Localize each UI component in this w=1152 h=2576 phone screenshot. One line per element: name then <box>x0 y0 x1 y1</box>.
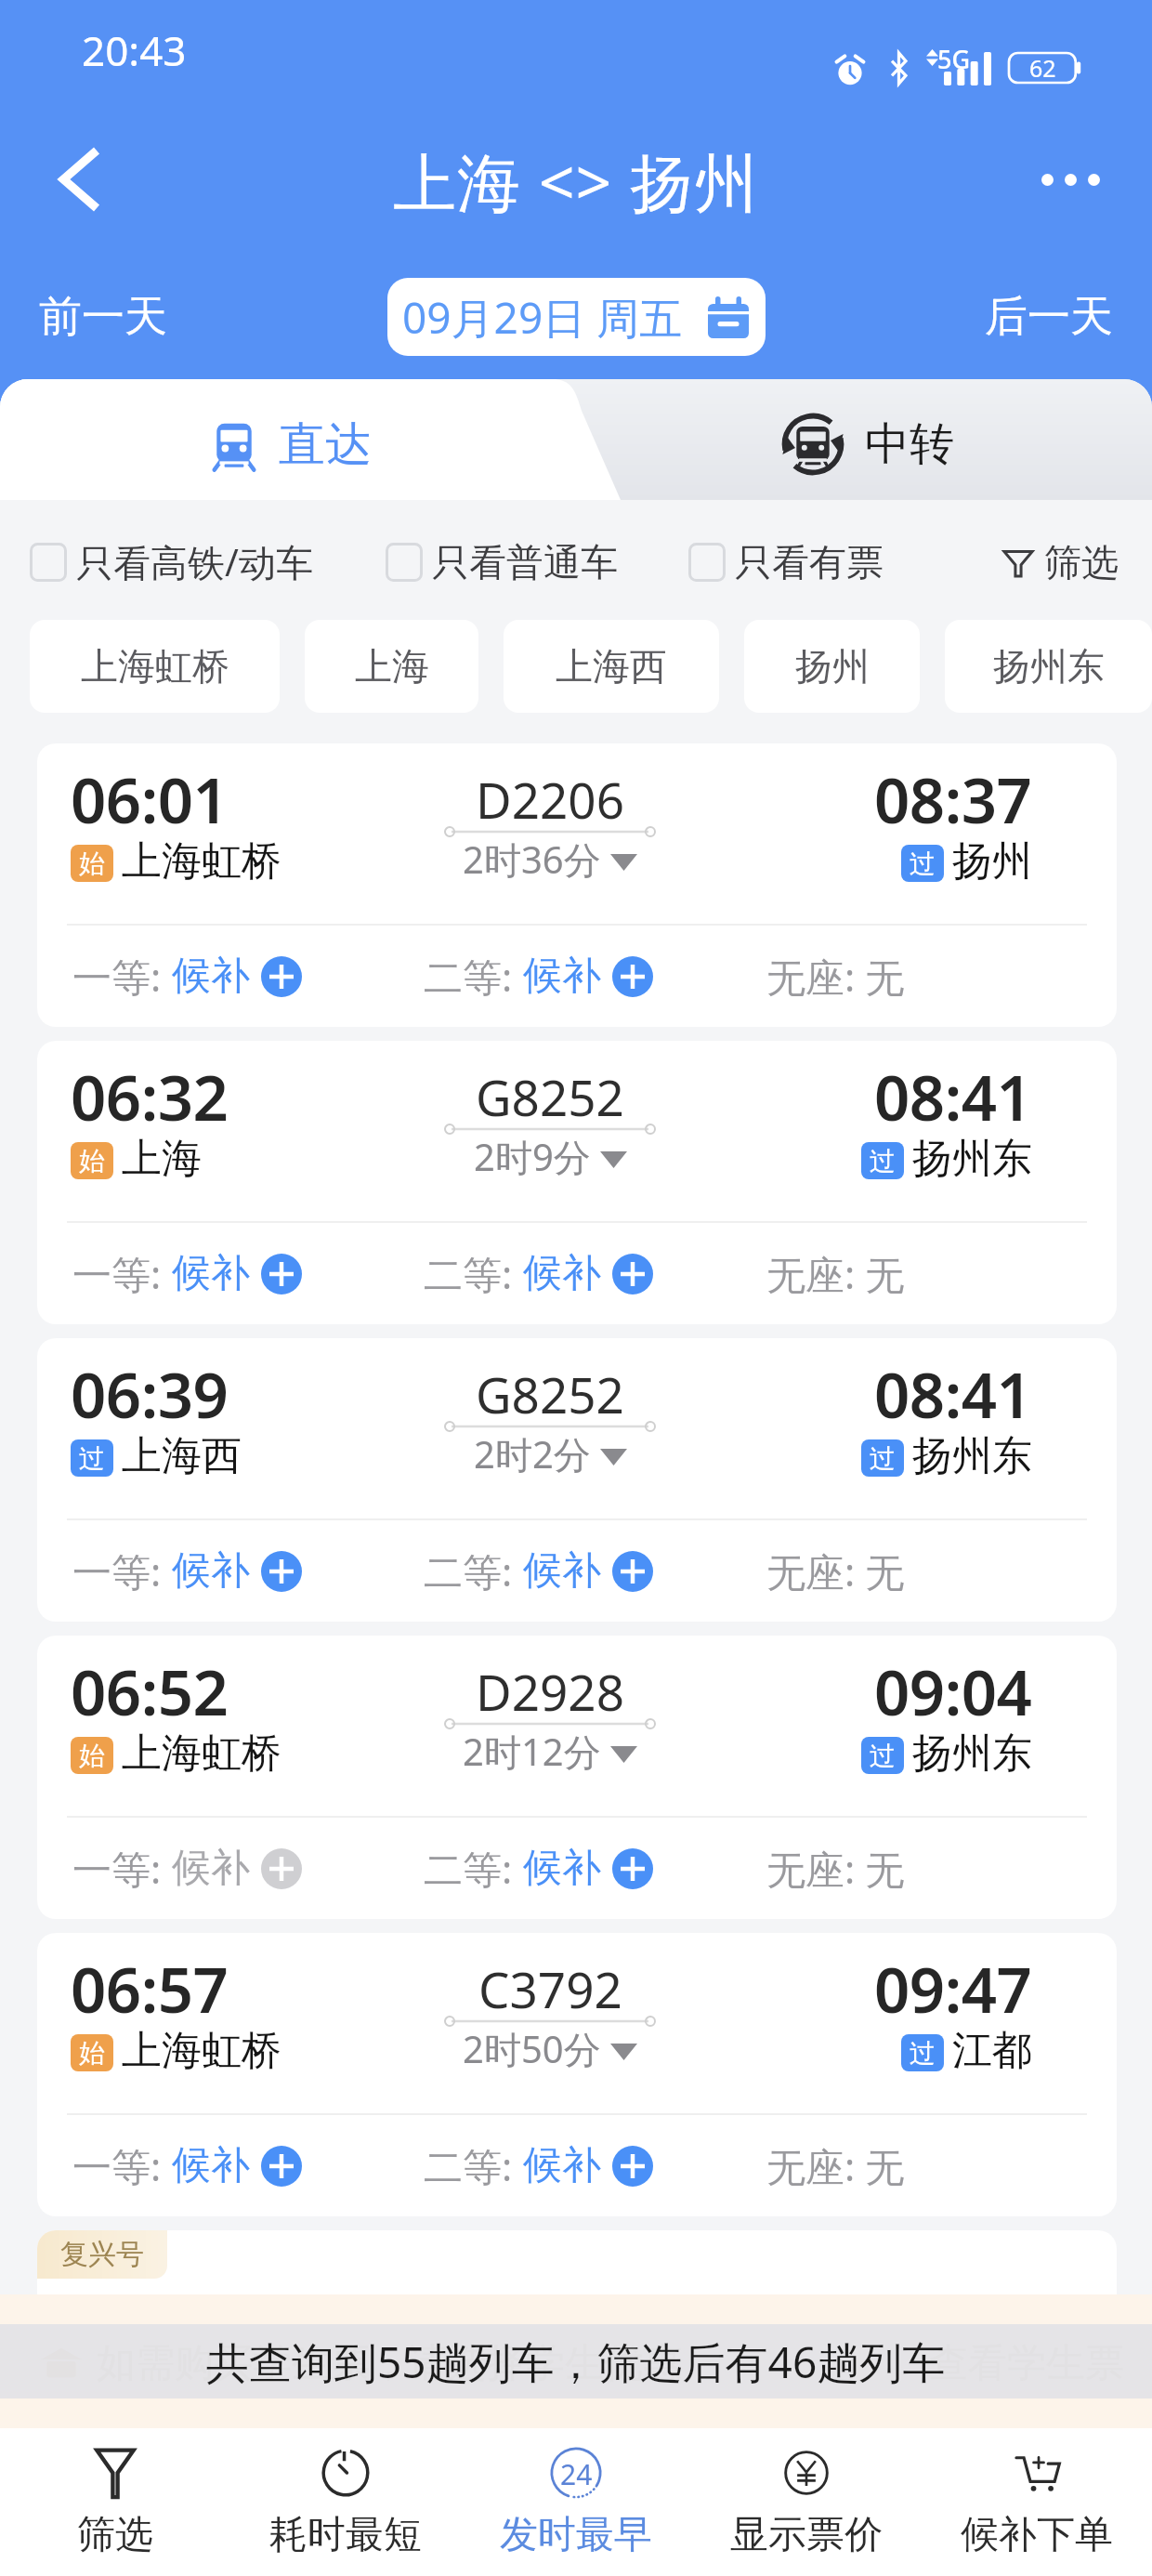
button[interactable]: 只看普通车 <box>386 533 618 591</box>
button[interactable]: 二等: <box>424 950 653 1003</box>
button[interactable]: 06:52 <box>37 1636 1117 1919</box>
staticText: 候补 <box>172 952 250 1001</box>
staticText: 中转 <box>865 416 954 472</box>
staticText: 06:52 <box>71 1649 229 1733</box>
staticText: 无座: 无 <box>766 950 905 1003</box>
staticText: 06:01 <box>71 756 229 841</box>
staticText: 上海西 <box>556 643 667 690</box>
button[interactable]: 二等: <box>424 2139 653 2192</box>
staticText: 无座: 无 <box>766 1842 905 1895</box>
button[interactable]: 06:01 <box>37 743 1117 1027</box>
staticText: 09:04 <box>874 1649 1032 1733</box>
staticText: 08:41 <box>874 1351 1032 1436</box>
button[interactable]: 06:39 <box>37 1338 1117 1622</box>
staticText: 08:41 <box>874 1054 1032 1138</box>
staticText: 2时50分 <box>463 2023 601 2074</box>
staticText: 共查询到55趟列车，筛选后有46趟列车 <box>206 2333 946 2391</box>
button[interactable]: 一等: <box>72 950 302 1003</box>
button[interactable]: 上海西 <box>504 620 719 713</box>
staticText: 二等: <box>424 950 523 1003</box>
staticText: 2时2分 <box>474 1428 591 1479</box>
staticText: 二等: <box>424 1247 523 1300</box>
button[interactable]: 直达 <box>0 379 624 500</box>
staticText: D2206 <box>476 766 624 833</box>
button[interactable]: 二等: <box>424 1842 653 1895</box>
button[interactable]: Back <box>39 140 117 218</box>
staticText: 二等: <box>424 2139 523 2192</box>
staticText: 无座: 无 <box>766 2139 905 2192</box>
button[interactable]: 复兴号 <box>37 2230 1117 2370</box>
staticText: 候补 <box>523 952 601 1001</box>
staticText: 上海虹桥 <box>122 2026 281 2076</box>
staticText: 2时36分 <box>463 834 601 885</box>
button[interactable]: 扬州 <box>744 620 920 713</box>
button[interactable]: 09月29日 周五 <box>387 278 766 356</box>
staticText: 06:39 <box>71 1351 229 1436</box>
staticText: 扬州 <box>795 643 870 690</box>
button[interactable]: 上海虹桥 <box>30 620 280 713</box>
staticText: D2928 <box>476 1658 624 1725</box>
staticText: G8252 <box>476 1063 624 1130</box>
staticText: 一等: <box>72 1247 172 1300</box>
staticText: 过 <box>870 1442 896 1475</box>
staticText: 过 <box>910 848 936 880</box>
button[interactable]: 一等: <box>72 1544 302 1597</box>
staticText: 候补下单 <box>961 2511 1113 2559</box>
staticText: 06:57 <box>71 1946 229 2031</box>
staticText: 上海 <box>355 643 429 690</box>
button[interactable]: 中转 <box>781 413 954 476</box>
staticText: 候补 <box>172 1546 250 1596</box>
staticText: 扬州东 <box>912 1728 1032 1779</box>
button[interactable]: 24 <box>461 2428 691 2576</box>
button[interactable]: 后一天 <box>974 281 1124 353</box>
staticText: G8252 <box>476 1360 624 1427</box>
button[interactable]: 只看有票 <box>688 533 884 591</box>
button[interactable]: 显示票价 <box>691 2428 922 2576</box>
staticText: 上海 <> 扬州 <box>393 138 759 224</box>
button[interactable]: 前一天 <box>28 281 178 353</box>
staticText: 只看高铁/动车 <box>76 536 313 587</box>
button[interactable]: 06:57 <box>37 1933 1117 2216</box>
button[interactable]: 二等: <box>424 1544 653 1597</box>
button[interactable]: 耗时最短 <box>230 2428 461 2576</box>
staticText: 江都 <box>952 2026 1032 2076</box>
staticText: 后一天 <box>985 290 1113 344</box>
staticText: 06:32 <box>71 1054 229 1138</box>
staticText: 扬州 <box>952 836 1032 887</box>
staticText: C3792 <box>478 1955 622 2022</box>
staticText: 上海虹桥 <box>122 1728 281 1779</box>
staticText: 候补 <box>523 1249 601 1298</box>
staticText: 只看有票 <box>735 539 884 585</box>
staticText: 上海虹桥 <box>81 643 229 690</box>
button[interactable]: 二等: <box>424 1247 653 1300</box>
staticText: 耗时最短 <box>269 2511 422 2559</box>
staticText: 24 <box>560 2455 593 2493</box>
button[interactable]: 一等: <box>72 2139 302 2192</box>
staticText: 筛选 <box>77 2511 153 2559</box>
staticText: 过 <box>910 2037 936 2070</box>
staticText: 一等: <box>72 1842 172 1895</box>
button[interactable]: 候补下单 <box>922 2428 1152 2576</box>
button[interactable]: 一等: <box>72 1842 302 1895</box>
button[interactable]: 扬州东 <box>945 620 1152 713</box>
staticText: 始 <box>79 1740 105 1772</box>
button[interactable]: 筛选 <box>0 2428 230 2576</box>
button[interactable]: 只看高铁/动车 <box>30 531 313 593</box>
button[interactable]: 06:32 <box>37 1041 1117 1324</box>
button[interactable]: 上海 <box>305 620 478 713</box>
staticText: 一等: <box>72 1544 172 1597</box>
button[interactable]: 一等: <box>72 1247 302 1300</box>
staticText: 二等: <box>424 1842 523 1895</box>
staticText: 复兴号 <box>60 2237 144 2272</box>
button[interactable]: More options <box>1031 140 1109 218</box>
staticText: 09月29日 周五 <box>402 288 683 347</box>
staticText: 过 <box>870 1740 896 1772</box>
button[interactable]: 筛选 <box>1001 533 1119 591</box>
staticText: 查看学生票 <box>929 2339 1124 2388</box>
staticText: 始 <box>79 2037 105 2070</box>
staticText: 无座: 无 <box>766 1247 905 1300</box>
staticText: 始 <box>79 1145 105 1177</box>
staticText: 过 <box>79 1442 105 1475</box>
staticText: 候补 <box>523 1546 601 1596</box>
staticText: 2时12分 <box>463 1726 601 1777</box>
